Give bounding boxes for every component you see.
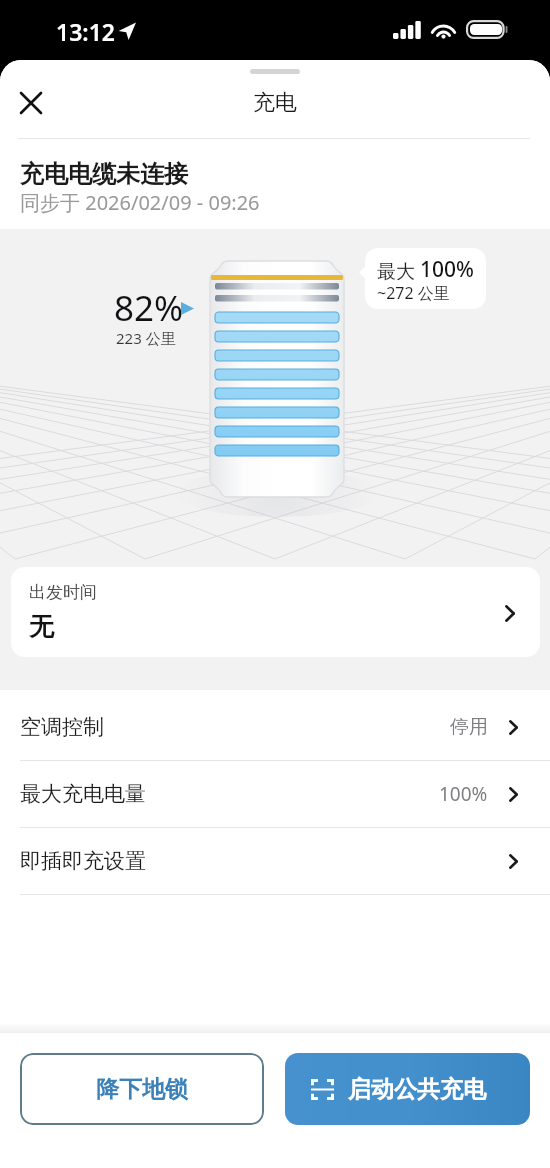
staticText: 即插即充设置	[20, 848, 146, 874]
button[interactable]: 启动公共充电	[285, 1053, 530, 1125]
staticText: 13:12	[56, 16, 115, 47]
button[interactable]: Close	[14, 86, 48, 120]
staticText: 最大充电电量	[20, 781, 146, 807]
button[interactable]: 出发时间	[11, 567, 540, 657]
staticText: 启动公共充电	[348, 1075, 486, 1104]
staticText: 空调控制	[20, 714, 104, 740]
button[interactable]: 最大充电电量	[0, 761, 550, 828]
staticText: 100%	[439, 781, 488, 807]
staticText: 出发时间	[29, 582, 97, 603]
button[interactable]: 空调控制	[0, 694, 550, 761]
staticText: 同步于 2026/02/09 - 09:26	[20, 189, 260, 216]
staticText: 停用	[450, 715, 488, 739]
staticText: 100%	[420, 255, 474, 284]
staticText: 最大	[377, 258, 420, 284]
staticText: 充电电缆未连接	[20, 159, 188, 189]
staticText: 无	[29, 611, 54, 642]
button[interactable]: 即插即充设置	[0, 828, 550, 895]
staticText: 降下地锁	[96, 1075, 188, 1104]
staticText: 充电	[253, 89, 297, 117]
staticText: 223 公里	[116, 328, 176, 348]
staticText: 82%	[114, 284, 184, 332]
button[interactable]: 降下地锁	[20, 1053, 264, 1125]
staticText: ~272 公里	[377, 282, 450, 304]
